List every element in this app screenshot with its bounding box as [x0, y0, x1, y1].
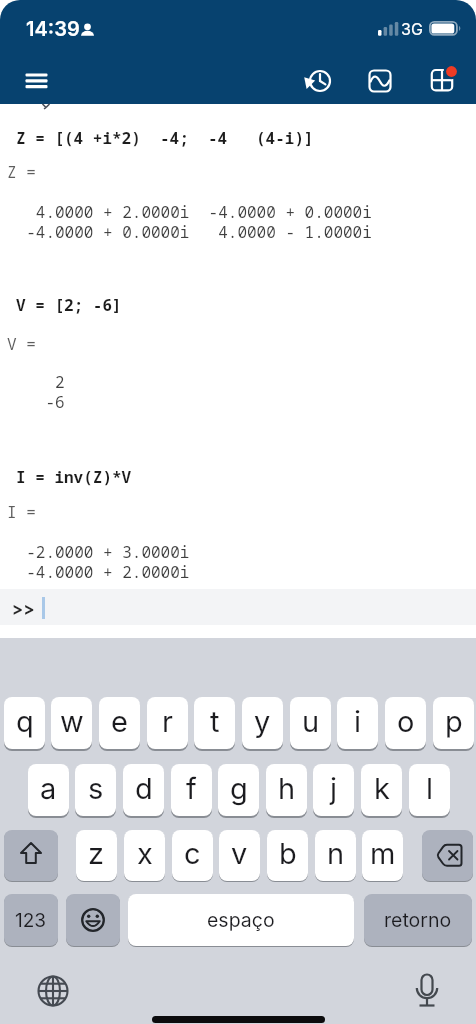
button[interactable] [0, 589, 476, 625]
staticText: -6 [7, 391, 65, 413]
button[interactable]: r [147, 697, 188, 749]
staticText: 2 [7, 371, 65, 393]
button[interactable]: e [99, 697, 140, 749]
staticText: a [40, 771, 57, 806]
staticText: s [88, 771, 104, 806]
staticText: b [279, 836, 297, 871]
button[interactable]: k [361, 764, 402, 816]
staticText: 123 [15, 909, 47, 932]
button[interactable]: m [362, 830, 403, 881]
staticText: y [254, 704, 271, 739]
staticText: f [186, 771, 197, 806]
button[interactable]: a [28, 764, 69, 816]
staticText: w [60, 704, 84, 739]
button[interactable]: b [267, 830, 308, 881]
staticText: m [370, 836, 396, 871]
button[interactable] [424, 58, 464, 98]
staticText: z [88, 836, 105, 871]
button[interactable] [36, 974, 70, 1008]
staticText: I = [7, 501, 36, 523]
staticText: I = inv(Z)*V [16, 466, 132, 488]
button[interactable]: 123 [4, 894, 58, 946]
staticText: o [397, 704, 415, 739]
staticText: -4.0000 + 2.0000i [7, 561, 190, 583]
staticText: i [354, 704, 362, 739]
staticText: V = [7, 333, 36, 355]
staticText: >> [12, 597, 35, 623]
button[interactable]: retorno [364, 894, 472, 946]
staticText: j [330, 771, 338, 806]
button[interactable]: x [124, 830, 165, 881]
button[interactable]: c [172, 830, 213, 881]
button[interactable]: q [4, 697, 45, 749]
staticText: Z = [7, 161, 36, 183]
staticText: q [16, 704, 34, 739]
button[interactable]: u [290, 697, 331, 749]
staticText: -2.0000 + 3.0000i [7, 541, 190, 563]
button[interactable] [66, 894, 120, 946]
staticText: r [162, 704, 173, 739]
button[interactable]: y [242, 697, 283, 749]
button[interactable]: h [266, 764, 307, 816]
staticText: retorno [384, 908, 452, 932]
button[interactable]: p [433, 697, 474, 749]
staticText: t [210, 704, 220, 739]
button[interactable]: w [51, 697, 92, 749]
staticText: espaço [207, 908, 275, 932]
staticText: 3G [401, 19, 423, 38]
staticText: p [445, 704, 463, 739]
button[interactable] [4, 830, 58, 881]
staticText: k [374, 771, 390, 806]
button[interactable]: n [315, 830, 356, 881]
button[interactable]: espaço [128, 894, 354, 946]
button[interactable] [409, 970, 445, 1010]
button[interactable] [422, 830, 473, 881]
button[interactable] [18, 66, 54, 96]
staticText: 14:39 [26, 17, 80, 41]
button[interactable]: j [313, 764, 354, 816]
staticText: -4.0000 + 0.0000i 4.0000 - 1.0000i [7, 221, 372, 243]
staticText: g [230, 771, 248, 806]
staticText: Z = [(4 +i*2) -4; -4 (4-i)] [16, 127, 314, 149]
staticText: V = [2; -6] [16, 294, 122, 316]
button[interactable]: t [194, 697, 235, 749]
staticText: x [137, 836, 153, 871]
button[interactable] [362, 62, 398, 98]
staticText: d [135, 771, 153, 806]
button[interactable]: g [218, 764, 259, 816]
button[interactable] [302, 63, 338, 99]
button[interactable]: d [123, 764, 164, 816]
staticText: u [302, 704, 320, 739]
button[interactable]: f [171, 764, 212, 816]
staticText: 4.0000 + 2.0000i -4.0000 + 0.0000i [7, 201, 372, 223]
button[interactable]: v [219, 830, 260, 881]
staticText: l [426, 771, 434, 806]
button[interactable]: l [409, 764, 450, 816]
staticText: e [111, 704, 128, 739]
button[interactable]: s [75, 764, 116, 816]
button[interactable]: i [337, 697, 378, 749]
button[interactable]: o [385, 697, 426, 749]
staticText: v [231, 836, 248, 871]
staticText: c [184, 836, 201, 871]
staticText: h [278, 771, 296, 806]
staticText: n [327, 836, 345, 871]
button[interactable]: z [76, 830, 117, 881]
